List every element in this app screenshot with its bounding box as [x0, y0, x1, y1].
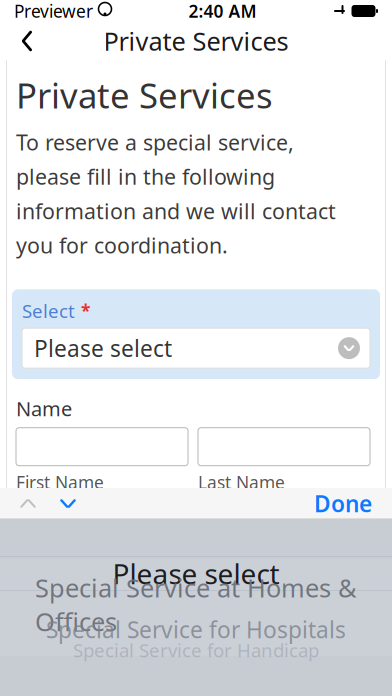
button[interactable]: Back — [0, 22, 54, 60]
staticText: * — [81, 299, 90, 322]
button[interactable]: Done — [300, 488, 386, 519]
staticText: Please select — [112, 555, 279, 592]
staticText: Select — [22, 298, 75, 323]
staticText: Private Services — [16, 72, 273, 118]
button[interactable]: Date field — [16, 542, 334, 580]
button[interactable]: Text field — [198, 428, 370, 466]
staticText: Please select — [34, 333, 172, 363]
staticText: Previewer — [14, 0, 93, 22]
staticText: 2:40 AM — [188, 0, 256, 22]
staticText: To reserve a special service, please fil… — [16, 128, 336, 259]
staticText: Special Service for Hospitals — [46, 614, 346, 644]
staticText: Date — [16, 510, 60, 536]
staticText: Name — [16, 395, 72, 422]
button[interactable]: Next field — [48, 488, 88, 519]
staticText: Private Services — [103, 24, 288, 58]
staticText: First Name — [16, 471, 104, 494]
staticText: Special Service for Handicap — [73, 638, 319, 662]
button[interactable]: Previous field — [8, 488, 48, 519]
button[interactable]: Please select — [22, 328, 370, 368]
staticText: Special Service at Homes & Offices — [35, 571, 357, 638]
staticText: Last Name — [198, 471, 285, 494]
button[interactable]: Text field — [16, 428, 188, 466]
staticText: Done — [314, 488, 372, 518]
